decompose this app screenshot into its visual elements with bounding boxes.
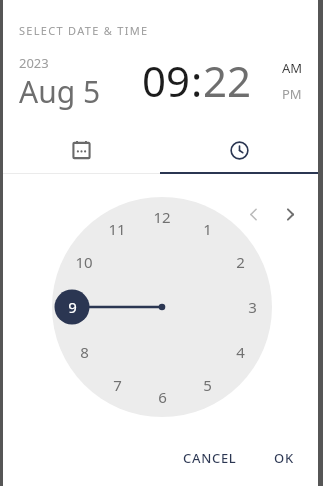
staticText: 9 xyxy=(68,297,77,317)
staticText: 8 xyxy=(80,342,89,362)
button[interactable]: Select time xyxy=(160,126,318,174)
staticText: 2 xyxy=(236,252,245,272)
staticText: : xyxy=(191,52,203,109)
staticText: CANCEL xyxy=(183,449,237,467)
staticText: 09 xyxy=(142,52,191,109)
staticText: PM xyxy=(282,85,302,103)
button[interactable]: 4 xyxy=(223,335,257,369)
staticText: 11 xyxy=(108,219,126,239)
staticText: 2023 xyxy=(19,54,49,72)
button[interactable]: 2 xyxy=(223,245,257,279)
staticText: 7 xyxy=(113,375,122,395)
staticText: Aug 5 xyxy=(19,71,101,112)
button[interactable]: 1 xyxy=(190,212,224,246)
staticText: AM xyxy=(282,59,303,77)
button[interactable]: 22 xyxy=(203,52,252,109)
button[interactable]: 12 xyxy=(145,200,179,234)
button[interactable]: 3 xyxy=(235,290,269,324)
staticText: 6 xyxy=(158,387,167,407)
staticText: SELECT DATE & TIME xyxy=(19,23,149,38)
button[interactable]: PM xyxy=(280,85,304,103)
button[interactable]: OK xyxy=(266,443,302,473)
button[interactable]: 11 xyxy=(100,212,134,246)
button[interactable]: Previous xyxy=(240,201,266,227)
staticText: 22 xyxy=(203,52,252,109)
button[interactable]: CANCEL xyxy=(175,443,245,473)
staticText: 4 xyxy=(236,342,245,362)
button[interactable]: Aug 5 xyxy=(17,71,103,112)
staticText: 3 xyxy=(248,297,257,317)
button[interactable]: Next xyxy=(277,201,303,227)
button[interactable]: 8 xyxy=(67,335,101,369)
staticText: OK xyxy=(274,449,294,467)
button[interactable]: 5 xyxy=(190,368,224,402)
staticText: 12 xyxy=(153,207,171,227)
button[interactable]: 09 xyxy=(142,52,191,109)
button[interactable]: AM xyxy=(280,59,305,77)
button[interactable]: 6 xyxy=(145,380,179,414)
button[interactable]: 7 xyxy=(100,368,134,402)
button[interactable]: Select date xyxy=(3,126,160,174)
staticText: 5 xyxy=(203,375,212,395)
staticText: 1 xyxy=(203,219,212,239)
button[interactable]: 9 xyxy=(55,290,89,324)
staticText: 10 xyxy=(75,252,93,272)
button[interactable]: 10 xyxy=(67,245,101,279)
